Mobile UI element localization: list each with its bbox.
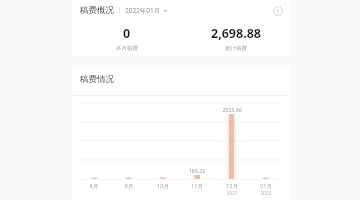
- staticText: 2022: [252, 190, 280, 196]
- button[interactable]: 8月: [80, 182, 108, 190]
- button[interactable]: 2,698.88: [181, 21, 290, 56]
- staticText: 2022年01月: [125, 6, 161, 15]
- staticText: 10月: [149, 182, 177, 190]
- staticText: 2021: [218, 190, 246, 196]
- staticText: 稿费情况: [80, 74, 114, 85]
- staticText: 165.22: [180, 167, 214, 174]
- button[interactable]: 11月: [183, 182, 211, 190]
- staticText: 0: [123, 25, 131, 42]
- staticText: 2533.66: [215, 106, 249, 113]
- staticText: 累计稿费: [225, 45, 247, 52]
- staticText: 8月: [80, 182, 108, 190]
- staticText: 01月: [252, 182, 280, 190]
- button[interactable]: 10月: [149, 182, 177, 190]
- staticText: 9月: [115, 182, 143, 190]
- staticText: 11月: [183, 182, 211, 190]
- button[interactable]: 2022年01月: [125, 6, 168, 15]
- staticText: 12月: [218, 182, 246, 190]
- button[interactable]: 01月: [252, 182, 280, 196]
- button[interactable]: 9月: [115, 182, 143, 190]
- button[interactable]: 12月: [218, 182, 246, 196]
- staticText: 本月稿费: [116, 45, 138, 52]
- staticText: 稿费概况: [80, 5, 114, 16]
- staticText: 2,698.88: [211, 25, 261, 42]
- button[interactable]: 0: [72, 21, 181, 56]
- button[interactable]: Info: [270, 3, 285, 18]
